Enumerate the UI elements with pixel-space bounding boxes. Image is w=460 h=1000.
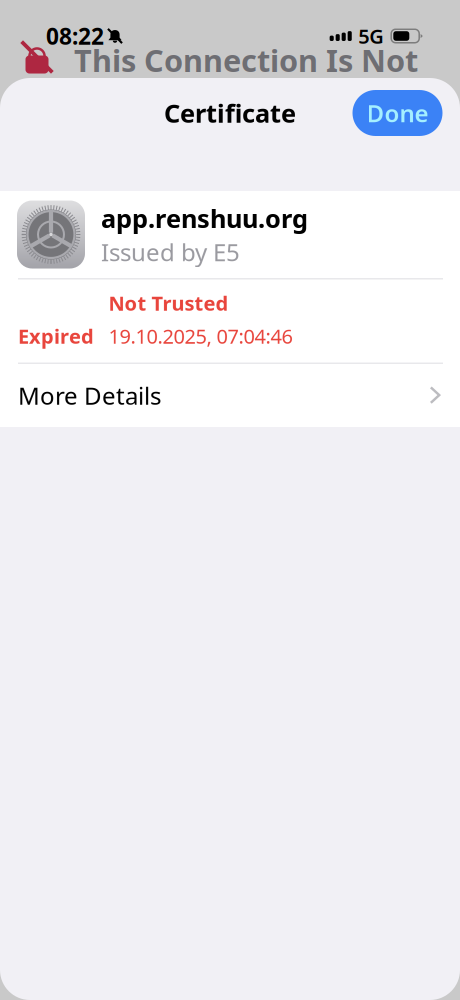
button[interactable]: Done (352, 90, 442, 136)
staticText: Expired (18, 323, 94, 349)
staticText: Issued by E5 (101, 236, 240, 268)
staticText: Done (366, 97, 428, 129)
staticText: Not Trusted (108, 290, 228, 316)
staticText: 5G (358, 23, 384, 49)
staticText: app.renshuu.org (101, 201, 308, 235)
staticText: Certificate (164, 96, 296, 130)
staticText: This Connection Is Not (74, 40, 418, 80)
staticText: More Details (18, 380, 161, 411)
staticText: 19.10.2025, 07:04:46 (108, 323, 292, 349)
button[interactable]: More Details (0, 364, 460, 427)
staticText: 08:22 (46, 21, 104, 51)
